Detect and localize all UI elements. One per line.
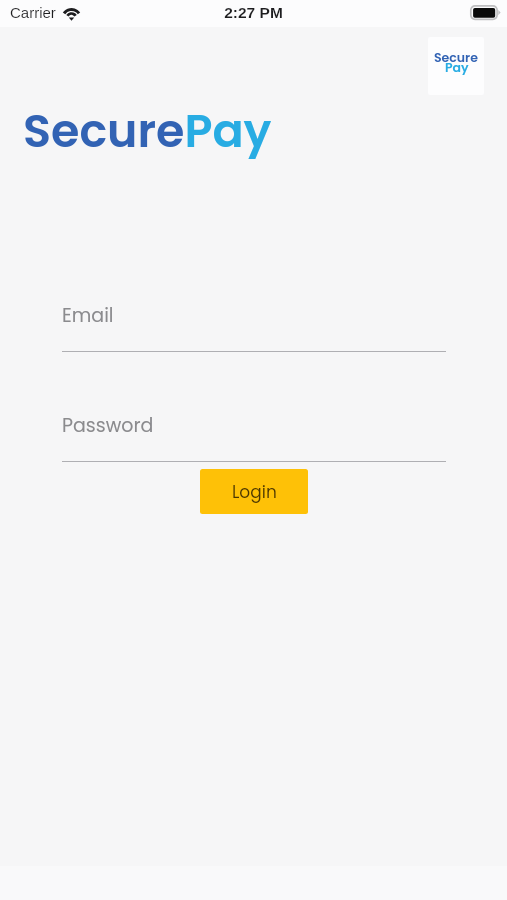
button[interactable]: Password — [62, 410, 446, 462]
staticText: 2:27 PM — [0, 4, 507, 21]
button[interactable]: Login — [200, 469, 308, 514]
other: Wi-Fi — [61, 5, 82, 20]
button[interactable]: SecurePay logo — [428, 37, 484, 95]
staticText: SecurePay — [23, 99, 272, 163]
staticText: Pay — [445, 59, 469, 76]
staticText: Login — [232, 480, 277, 504]
staticText: Secure — [434, 49, 478, 66]
other: Battery full — [470, 5, 501, 21]
button[interactable]: Email — [62, 300, 446, 352]
staticText: Carrier — [10, 4, 56, 21]
staticText: Password — [62, 412, 154, 439]
staticText: Email — [62, 302, 114, 329]
